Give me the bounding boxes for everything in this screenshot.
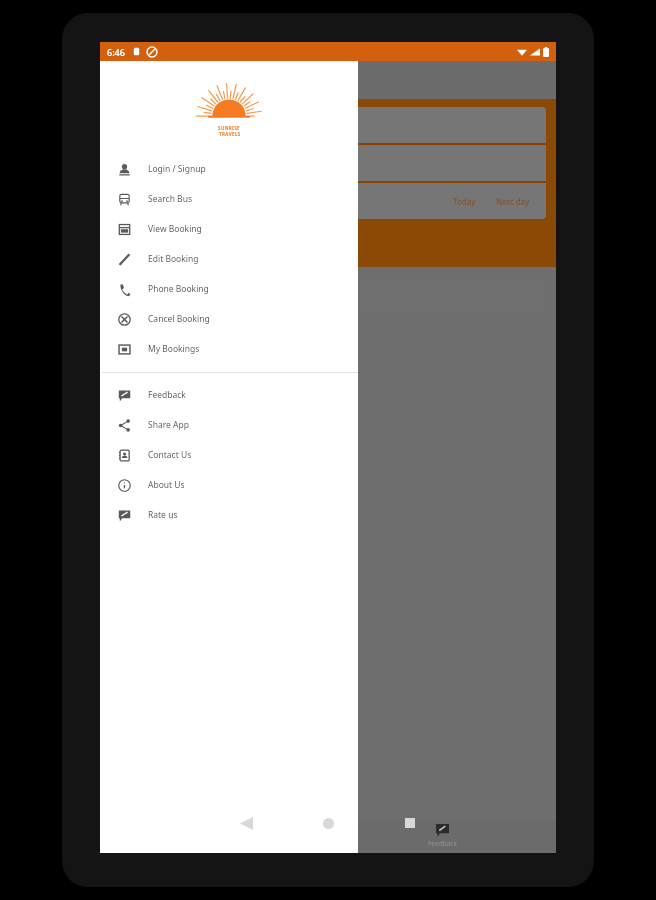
button[interactable]: My Bookings xyxy=(100,334,358,364)
button[interactable]: Feedback xyxy=(100,380,358,410)
staticText: COVID SAFE GUIDELINES xyxy=(120,288,226,300)
staticText: Login / Signup xyxy=(148,163,206,175)
staticText: Share App xyxy=(148,419,189,431)
staticText: View Booking xyxy=(148,223,202,235)
staticText: Today xyxy=(453,196,476,207)
button[interactable]: Search Bus xyxy=(100,184,358,214)
staticText: SEARCH BUSES xyxy=(112,231,210,247)
button[interactable]: COVID SAFE GUIDELINES xyxy=(110,275,546,313)
staticText: Contact Us xyxy=(148,449,192,461)
button[interactable]: Phone Booking xyxy=(100,274,358,304)
staticText: Next day xyxy=(496,196,530,207)
staticText: Phone Booking xyxy=(148,283,209,295)
button[interactable]: Account xyxy=(100,819,328,853)
button[interactable]: About Us xyxy=(100,470,358,500)
button[interactable]: Home xyxy=(310,805,346,841)
button[interactable]: Back xyxy=(228,805,264,841)
button[interactable]: Feedback xyxy=(328,819,556,853)
staticText: Edit Booking xyxy=(148,253,199,265)
staticText: 6:46 xyxy=(107,46,125,58)
button[interactable]: Today xyxy=(449,196,480,207)
button[interactable]: Rate us xyxy=(100,500,358,530)
staticText: Feedback xyxy=(148,389,186,401)
staticText: My Bookings xyxy=(148,343,200,355)
button[interactable]: Login / Signup xyxy=(100,154,358,184)
staticText: TRAVELS xyxy=(219,131,241,137)
button[interactable]: Share App xyxy=(100,410,358,440)
button[interactable]: Next day xyxy=(492,196,534,207)
button[interactable]: View Booking xyxy=(100,214,358,244)
button[interactable]: Contact Us xyxy=(100,440,358,470)
button[interactable]: Cancel Booking xyxy=(100,304,358,334)
staticText: About Us xyxy=(148,479,185,491)
staticText: Feedback xyxy=(428,839,457,848)
staticText: Rate us xyxy=(148,509,178,521)
button[interactable]: Recents xyxy=(392,805,428,841)
staticText: Cancel Booking xyxy=(148,313,210,325)
staticText: Search Bus xyxy=(148,193,192,205)
staticText: SUNRISE xyxy=(218,125,241,131)
button[interactable]: Edit Booking xyxy=(100,244,358,274)
